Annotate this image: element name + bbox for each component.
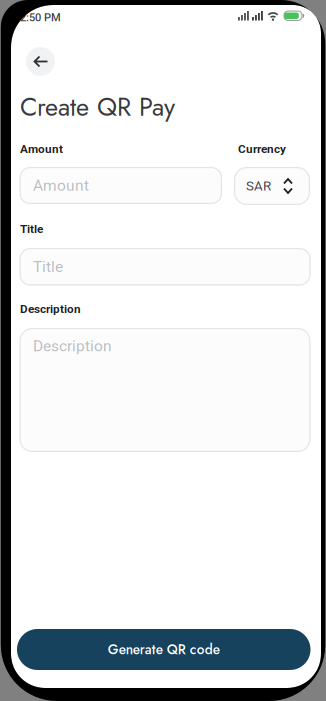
staticText: Description — [33, 337, 112, 355]
staticText: Amount — [33, 176, 89, 194]
staticText: Title — [20, 222, 43, 236]
staticText: SAR — [246, 178, 271, 194]
button[interactable]: Description text field — [19, 328, 310, 452]
staticText: Create QR Pay — [20, 89, 175, 125]
button[interactable]: Title text field — [19, 248, 310, 285]
button[interactable]: Back — [26, 47, 55, 76]
staticText: Amount — [20, 142, 63, 156]
staticText: Description — [20, 302, 81, 316]
staticText: Currency — [238, 142, 286, 156]
button[interactable]: Generate QR code — [17, 629, 310, 670]
staticText: Title — [33, 258, 63, 276]
button[interactable]: Currency SAR — [234, 167, 310, 205]
staticText: Generate QR code — [108, 640, 220, 659]
staticText: 2:50 PM — [20, 11, 61, 24]
button[interactable]: Amount text field — [19, 167, 222, 204]
